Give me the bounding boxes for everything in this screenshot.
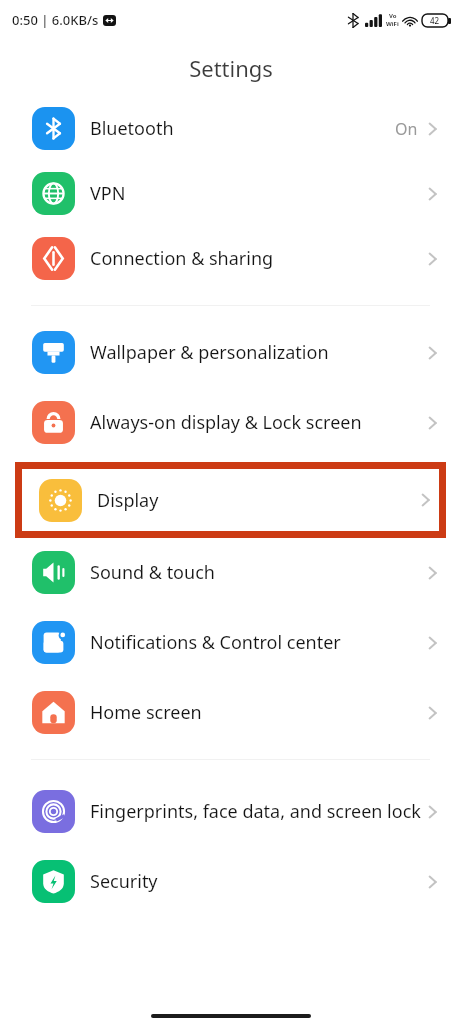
button[interactable]: Bluetooth xyxy=(0,96,461,161)
staticText: Security xyxy=(90,869,428,894)
button[interactable]: Sound & touch xyxy=(0,540,461,605)
staticText: 42 xyxy=(430,15,440,26)
staticText: Display xyxy=(97,488,421,513)
staticText: Always-on display & Lock screen xyxy=(90,410,428,435)
button[interactable]: Display xyxy=(22,469,439,531)
button[interactable]: Connection & sharing xyxy=(0,226,461,291)
staticText: Vo xyxy=(389,12,397,20)
button[interactable]: Wallpaper & personalization xyxy=(0,320,461,385)
button[interactable]: Notifications & Control center xyxy=(0,605,461,680)
staticText: Connection & sharing xyxy=(90,246,428,271)
button[interactable]: Home screen xyxy=(0,680,461,745)
staticText: Bluetooth xyxy=(90,116,395,141)
staticText: VPN xyxy=(90,181,428,206)
staticText: Wallpaper & personalization xyxy=(90,340,428,365)
button[interactable]: Fingerprints, face data, and screen lock xyxy=(0,774,461,849)
button[interactable]: Always-on display & Lock screen xyxy=(0,385,461,460)
staticText: On xyxy=(395,118,418,140)
staticText: WiFi xyxy=(386,20,399,28)
staticText: Settings xyxy=(189,53,273,83)
staticText: Fingerprints, face data, and screen lock xyxy=(90,799,428,824)
staticText: 0:50 | 6.0KB/s xyxy=(12,11,99,29)
staticText: Sound & touch xyxy=(90,560,428,585)
staticText: Home screen xyxy=(90,700,428,725)
button[interactable]: VPN xyxy=(0,161,461,226)
staticText: Notifications & Control center xyxy=(90,630,428,655)
button[interactable]: Security xyxy=(0,849,461,914)
